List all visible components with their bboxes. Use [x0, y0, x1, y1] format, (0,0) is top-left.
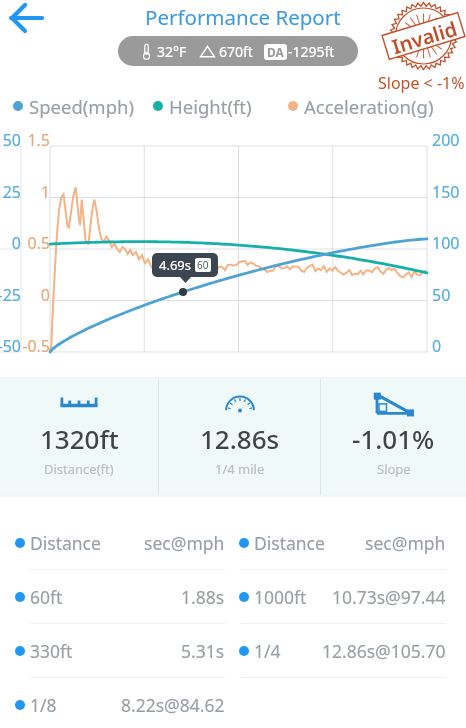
staticText: 50: [432, 284, 466, 306]
button[interactable]: 32°F: [118, 36, 358, 66]
staticText: 50: [0, 129, 21, 151]
button[interactable]: 330ft: [0, 624, 233, 677]
button[interactable]: Distance: [233, 516, 466, 569]
button[interactable]: Distance: [0, 516, 233, 569]
staticText: 0: [432, 335, 466, 357]
staticText: 1.5: [14, 129, 50, 151]
staticText: Distance(ft): [44, 460, 114, 478]
button[interactable]: Speed(mph): [13, 93, 134, 119]
staticText: 200: [432, 129, 466, 151]
staticText: 60ft: [30, 585, 63, 609]
staticText: 4.69s: [159, 256, 192, 274]
staticText: Performance Report: [145, 3, 341, 31]
button[interactable]: 60ft: [0, 570, 233, 623]
staticText: Invalid: [388, 15, 460, 60]
staticText: 1: [14, 181, 50, 203]
staticText: 1/4: [254, 639, 281, 663]
staticText: 60: [197, 258, 209, 272]
staticText: 1/4 mile: [215, 460, 265, 478]
staticText: DA: [267, 44, 284, 60]
staticText: 1.88s: [181, 585, 225, 609]
staticText: 12.86s: [200, 421, 280, 456]
staticText: 0.5: [14, 232, 50, 254]
staticText: 0: [14, 284, 50, 306]
staticText: -50: [0, 335, 21, 357]
staticText: -0.5: [14, 335, 50, 357]
staticText: Height(ft): [169, 94, 252, 119]
button[interactable]: -1.01%: [321, 379, 466, 495]
button[interactable]: 1/4: [233, 624, 466, 677]
staticText: Speed(mph): [29, 94, 134, 119]
staticText: Distance: [30, 531, 101, 555]
staticText: 1000ft: [254, 585, 307, 609]
staticText: Acceleration(g): [304, 94, 434, 119]
button[interactable]: 12.86s: [159, 379, 320, 495]
button[interactable]: Invalid run: [388, 1, 459, 71]
staticText: 32°F: [157, 42, 187, 61]
staticText: sec@mph: [365, 531, 446, 555]
staticText: -25: [0, 284, 21, 306]
button[interactable]: 1/8: [0, 678, 233, 728]
staticText: -1295ft: [288, 42, 335, 61]
staticText: 0: [0, 232, 21, 254]
staticText: sec@mph: [144, 531, 225, 555]
button[interactable]: Back: [4, 2, 48, 34]
button[interactable]: 1000ft: [233, 570, 466, 623]
staticText: Slope: [377, 460, 411, 478]
staticText: 10.73s@97.44: [332, 585, 446, 609]
staticText: 1320ft: [40, 421, 119, 456]
staticText: 150: [432, 181, 466, 203]
staticText: 100: [432, 232, 466, 254]
staticText: Slope < -1%: [378, 72, 465, 94]
staticText: -1.01%: [352, 421, 435, 456]
button[interactable]: Acceleration(g): [288, 93, 434, 119]
staticText: 25: [0, 181, 21, 203]
button[interactable]: 1320ft: [0, 379, 158, 495]
staticText: 8.22s@84.62: [121, 693, 225, 717]
staticText: 670ft: [219, 42, 253, 61]
staticText: Distance: [254, 531, 325, 555]
staticText: 12.86s@105.70: [322, 639, 446, 663]
staticText: 330ft: [30, 639, 73, 663]
staticText: 1/8: [30, 693, 57, 717]
button[interactable]: Height(ft): [153, 93, 252, 119]
staticText: 5.31s: [181, 639, 225, 663]
